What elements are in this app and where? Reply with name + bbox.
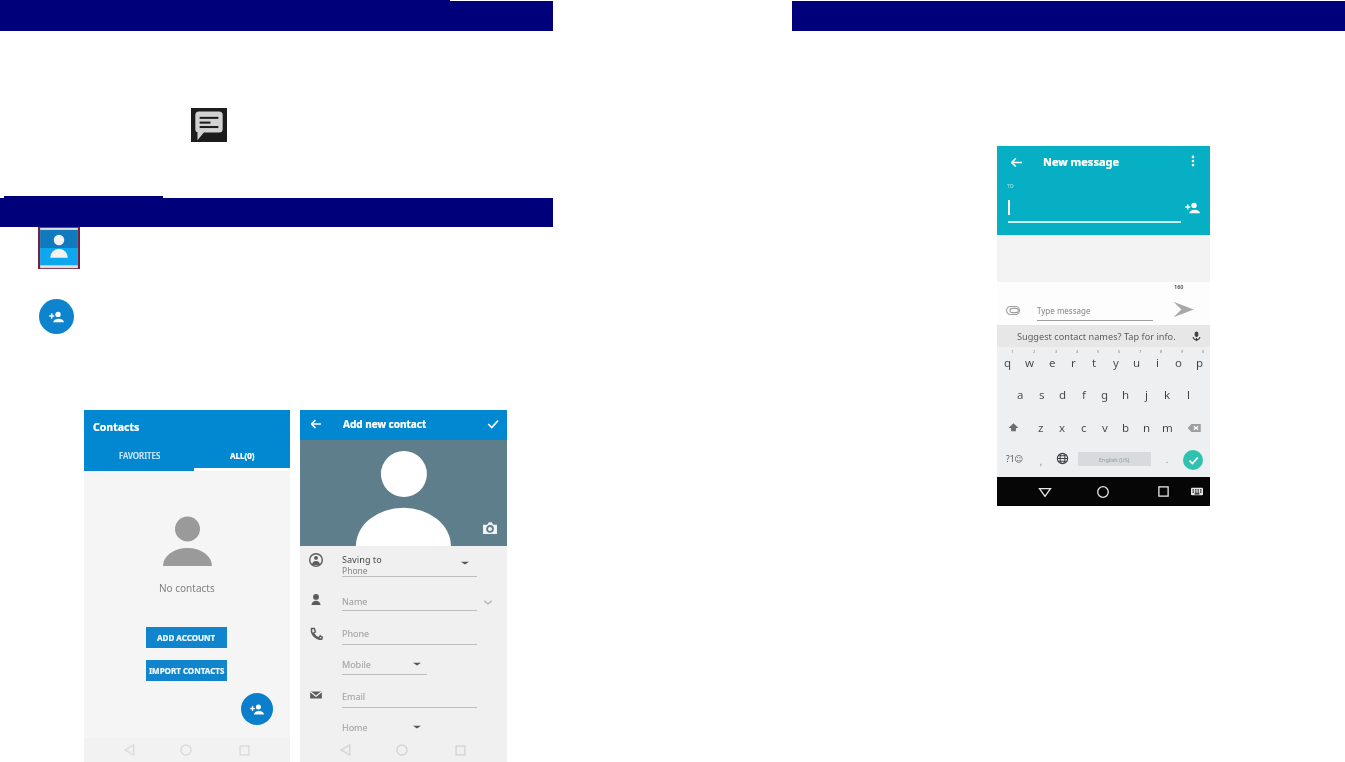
staticText: ?1☺ <box>1006 453 1024 465</box>
button[interactable]: 1 <box>997 347 1019 379</box>
button[interactable]: Back <box>1034 477 1056 506</box>
button[interactable]: 8 <box>1147 347 1168 379</box>
button[interactable]: Add contact <box>39 299 74 334</box>
button[interactable]: 6 <box>1105 347 1126 379</box>
button[interactable]: Suggest contact names? Tap for info. <box>997 325 1210 347</box>
button[interactable]: l <box>1178 379 1199 411</box>
button[interactable]: h <box>1115 379 1136 411</box>
staticText: e <box>1049 355 1056 371</box>
button[interactable]: 2 <box>1019 347 1041 379</box>
button[interactable]: Shift <box>997 411 1030 444</box>
button[interactable]: Back <box>334 738 356 762</box>
button[interactable]: s <box>1031 379 1052 411</box>
staticText: 160 <box>1174 283 1184 290</box>
staticText: l <box>1187 387 1190 403</box>
button[interactable]: Recents <box>449 738 471 762</box>
staticText: x <box>1059 420 1066 436</box>
button[interactable]: b <box>1115 411 1136 444</box>
staticText: i <box>1156 355 1159 371</box>
staticText: , <box>1040 456 1043 467</box>
button[interactable]: , <box>1031 447 1051 470</box>
staticText: Suggest contact names? Tap for info. <box>1017 330 1176 343</box>
staticText: g <box>1101 387 1109 403</box>
staticText: New message <box>1043 154 1120 169</box>
button[interactable]: n <box>1136 411 1157 444</box>
staticText: Phone <box>342 565 368 577</box>
button[interactable]: Back <box>1005 151 1027 173</box>
button[interactable]: Done <box>1183 448 1203 471</box>
button[interactable]: ADD ACCOUNT <box>146 627 227 648</box>
button[interactable]: v <box>1094 411 1115 444</box>
staticText: IMPORT CONTACTS <box>149 665 225 676</box>
staticText: Saving to <box>342 553 382 565</box>
button[interactable]: Keyboard <box>1187 477 1207 506</box>
button[interactable]: ALL(0) <box>191 450 294 461</box>
staticText: p <box>1196 355 1204 371</box>
staticText: m <box>1162 420 1173 436</box>
staticText: 3 <box>1055 349 1058 354</box>
staticText: Mobile <box>342 658 371 670</box>
staticText: 5 <box>1097 349 1100 354</box>
button[interactable]: 9 <box>1168 347 1189 379</box>
button[interactable]: c <box>1073 411 1094 444</box>
staticText: 0 <box>1202 349 1205 354</box>
button[interactable]: m <box>1157 411 1178 444</box>
staticText: Phone <box>342 627 370 639</box>
button[interactable]: ?1☺ <box>1003 447 1027 470</box>
button[interactable]: k <box>1157 379 1178 411</box>
staticText: . <box>1166 454 1169 465</box>
button[interactable]: Home <box>175 738 197 762</box>
button[interactable]: Back <box>118 738 140 762</box>
button[interactable]: More options <box>1183 151 1203 171</box>
button[interactable]: FAVORITES <box>88 450 191 461</box>
button[interactable]: Send <box>1169 296 1197 322</box>
button[interactable]: Change photo <box>481 520 499 536</box>
staticText: Home <box>342 721 368 733</box>
staticText: k <box>1164 387 1171 403</box>
button[interactable]: 5 <box>1084 347 1105 379</box>
button[interactable]: English (US) <box>1078 452 1151 466</box>
staticText: z <box>1038 420 1044 436</box>
button[interactable]: Back <box>305 413 327 435</box>
button[interactable]: a <box>1009 379 1031 411</box>
button[interactable]: 7 <box>1126 347 1147 379</box>
staticText: r <box>1071 355 1076 371</box>
staticText: ALL(0) <box>230 450 255 461</box>
staticText: Email <box>342 690 366 702</box>
button[interactable]: Change language <box>1052 447 1072 470</box>
staticText: w <box>1025 355 1035 371</box>
staticText: No contacts <box>159 581 215 595</box>
staticText: 2 <box>1033 349 1036 354</box>
button[interactable]: Backspace <box>1178 411 1210 444</box>
button[interactable]: . <box>1157 447 1177 470</box>
button[interactable]: 3 <box>1041 347 1063 379</box>
staticText: Contacts <box>93 420 140 434</box>
button[interactable]: d <box>1052 379 1073 411</box>
button[interactable]: Attach <box>1001 301 1025 320</box>
staticText: d <box>1059 387 1067 403</box>
button[interactable]: Save <box>482 413 504 435</box>
staticText: u <box>1133 355 1141 371</box>
button[interactable]: IMPORT CONTACTS <box>146 660 227 681</box>
button[interactable]: j <box>1136 379 1157 411</box>
staticText: 6 <box>1118 349 1121 354</box>
button[interactable]: x <box>1052 411 1073 444</box>
button[interactable]: Add contact <box>241 693 273 725</box>
button[interactable]: z <box>1030 411 1052 444</box>
button[interactable]: Recents <box>233 738 255 762</box>
button[interactable]: Contacts <box>38 227 80 269</box>
button[interactable]: Home <box>391 738 413 762</box>
button[interactable]: Add recipient <box>1181 196 1203 218</box>
button[interactable]: Recents <box>1152 477 1174 506</box>
button[interactable]: g <box>1094 379 1115 411</box>
staticText: q <box>1004 355 1012 371</box>
staticText: TO <box>1007 183 1014 190</box>
staticText: 8 <box>1160 349 1163 354</box>
staticText: n <box>1143 420 1151 436</box>
button[interactable]: f <box>1073 379 1094 411</box>
button[interactable]: 0 <box>1189 347 1210 379</box>
staticText: Add new contact <box>343 417 427 431</box>
button[interactable]: 4 <box>1063 347 1084 379</box>
staticText: 4 <box>1076 349 1079 354</box>
button[interactable]: Home <box>1092 477 1114 506</box>
